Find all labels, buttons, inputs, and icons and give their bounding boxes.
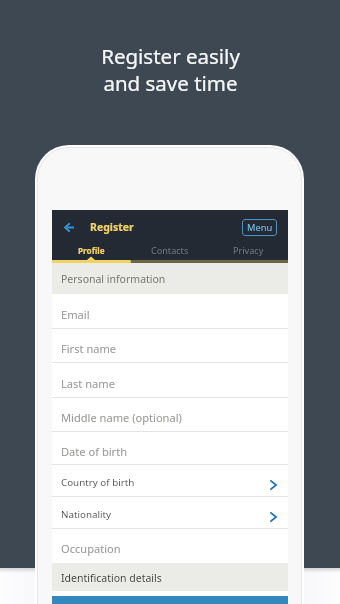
staticText: Last name (61, 376, 115, 391)
button[interactable]: Nationality (52, 497, 288, 529)
button[interactable]: Personal information (52, 263, 288, 294)
button[interactable]: Identification details (52, 563, 288, 591)
staticText: Register easily and save time (101, 42, 240, 97)
staticText: Menu (247, 221, 273, 234)
button[interactable]: Last name (52, 363, 288, 398)
staticText: Email (61, 307, 90, 322)
staticText: Privacy (233, 244, 264, 256)
button[interactable]: Back (60, 218, 78, 236)
button[interactable]: Profile (52, 240, 130, 260)
button[interactable]: Date of birth (52, 432, 288, 465)
staticText: Personal information (61, 272, 166, 286)
button[interactable]: Contacts (130, 240, 209, 260)
button[interactable]: Privacy (209, 240, 288, 260)
staticText: Profile (78, 245, 105, 256)
button[interactable]: Occupation (52, 529, 288, 563)
staticText: Occupation (61, 541, 121, 556)
staticText: Nationality (61, 508, 112, 521)
button[interactable]: Email (52, 294, 288, 329)
staticText: First name (61, 341, 117, 356)
staticText: Middle name (optional) (61, 410, 182, 425)
button[interactable]: Middle name (optional) (52, 398, 288, 432)
staticText: Country of birth (61, 476, 135, 489)
button[interactable]: Country of birth (52, 465, 288, 497)
staticText: Register (90, 220, 134, 234)
button[interactable]: Menu (242, 219, 277, 236)
staticText: Identification details (61, 571, 162, 585)
button[interactable]: First name (52, 329, 288, 363)
staticText: Contacts (151, 244, 189, 256)
staticText: Date of birth (61, 444, 128, 459)
